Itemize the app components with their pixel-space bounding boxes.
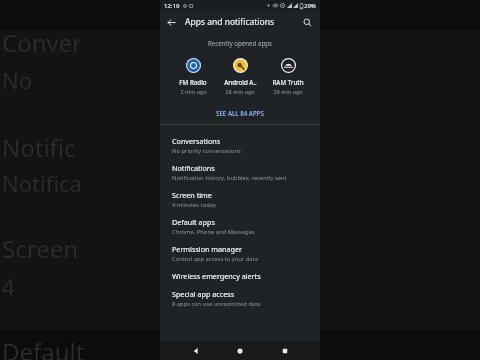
- button[interactable]: Home: [231, 342, 249, 360]
- staticText: Notificatio: [2, 168, 86, 198]
- staticText: Apps and notifications: [185, 16, 274, 28]
- staticText: 8 apps can use unrestricted data: [172, 300, 261, 308]
- staticText: FM Radio: [179, 78, 207, 86]
- staticText: RAM Truth: [272, 78, 304, 86]
- staticText: 29%: [304, 2, 316, 10]
- staticText: Default apps: [172, 217, 215, 227]
- staticText: 4 minutes: [2, 271, 86, 301]
- staticText: Notifications: [172, 163, 215, 173]
- staticText: Conversations: [172, 136, 221, 146]
- staticText: Recently opened apps: [208, 39, 273, 47]
- staticText: Permission manager: [172, 244, 243, 254]
- button[interactable]: SEE ALL 84 APPS: [160, 106, 320, 120]
- staticText: Android A..: [224, 78, 257, 86]
- staticText: 28 min ago: [225, 88, 255, 96]
- staticText: 2 min ago: [180, 88, 207, 96]
- staticText: Notificati: [2, 131, 86, 164]
- staticText: Screen ti: [2, 232, 86, 265]
- button[interactable]: RAM Truth: [265, 57, 311, 97]
- button[interactable]: Recent apps: [276, 342, 294, 360]
- button[interactable]: Screen time: [160, 186, 320, 213]
- staticText: 4 minutes today: [172, 201, 216, 209]
- button[interactable]: Android A..: [217, 57, 263, 97]
- staticText: ently sent: [166, 168, 268, 198]
- staticText: No priority: [2, 65, 86, 95]
- staticText: Notification history, bubbles, recently …: [172, 174, 287, 182]
- staticText: No priority conversations: [172, 147, 241, 155]
- button[interactable]: Back: [160, 11, 182, 33]
- button[interactable]: FM Radio: [170, 57, 216, 97]
- button[interactable]: Permission manager: [160, 240, 320, 267]
- button[interactable]: Default apps: [160, 213, 320, 240]
- staticText: 29 min ago: [273, 88, 303, 96]
- button[interactable]: Special app access: [160, 285, 320, 312]
- staticText: Default a: [2, 335, 86, 360]
- staticText: Control app access to your data: [172, 255, 258, 263]
- button[interactable]: Conversations: [160, 132, 320, 159]
- staticText: Wireless emergency alerts: [172, 271, 261, 281]
- staticText: Conversa: [2, 26, 86, 59]
- staticText: Chrome, Phone and Messages: [172, 228, 255, 236]
- staticText: Special app access: [172, 289, 235, 299]
- button[interactable]: Search: [296, 11, 318, 33]
- button[interactable]: Wireless emergency alerts: [160, 267, 320, 285]
- button[interactable]: Back: [187, 342, 205, 360]
- staticText: 12:19: [164, 2, 180, 10]
- staticText: SEE ALL 84 APPS: [216, 109, 264, 117]
- staticText: Screen time: [172, 190, 212, 200]
- button[interactable]: Notifications: [160, 159, 320, 186]
